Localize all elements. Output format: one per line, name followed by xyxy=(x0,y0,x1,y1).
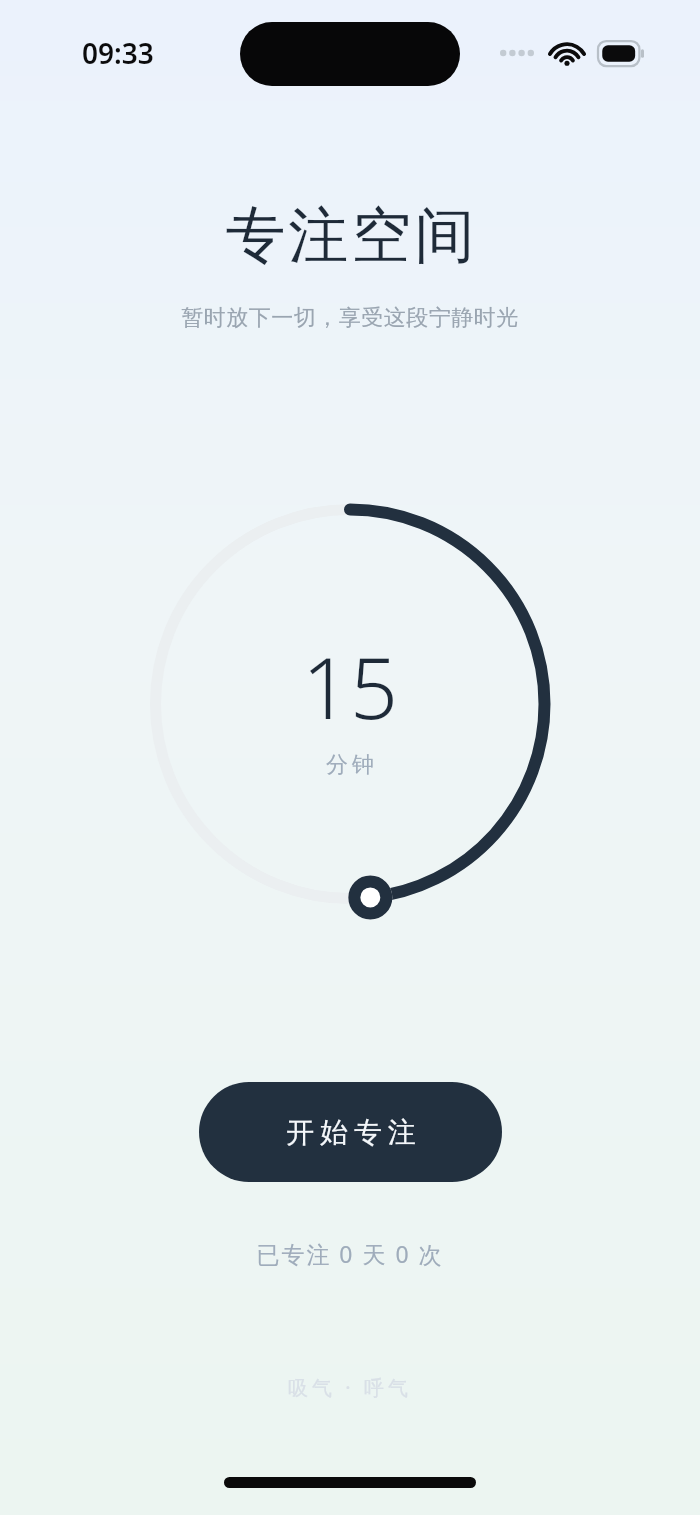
staticText: 分钟 xyxy=(324,751,376,779)
button[interactable]: 开始专注 xyxy=(199,1082,502,1182)
staticText: 专注空间 xyxy=(224,198,476,274)
staticText: 15 xyxy=(302,629,398,743)
button[interactable]: 专注时长选择，15 分钟 xyxy=(130,484,570,924)
staticText: 已专注 0 天 0 次 xyxy=(256,1238,444,1269)
staticText: 吸气 · 呼气 xyxy=(288,1374,412,1401)
staticText: 开始专注 xyxy=(283,1115,419,1150)
staticText: 暂时放下一切，享受这段宁静时光 xyxy=(181,304,519,332)
staticText: 09:33 xyxy=(82,34,154,72)
